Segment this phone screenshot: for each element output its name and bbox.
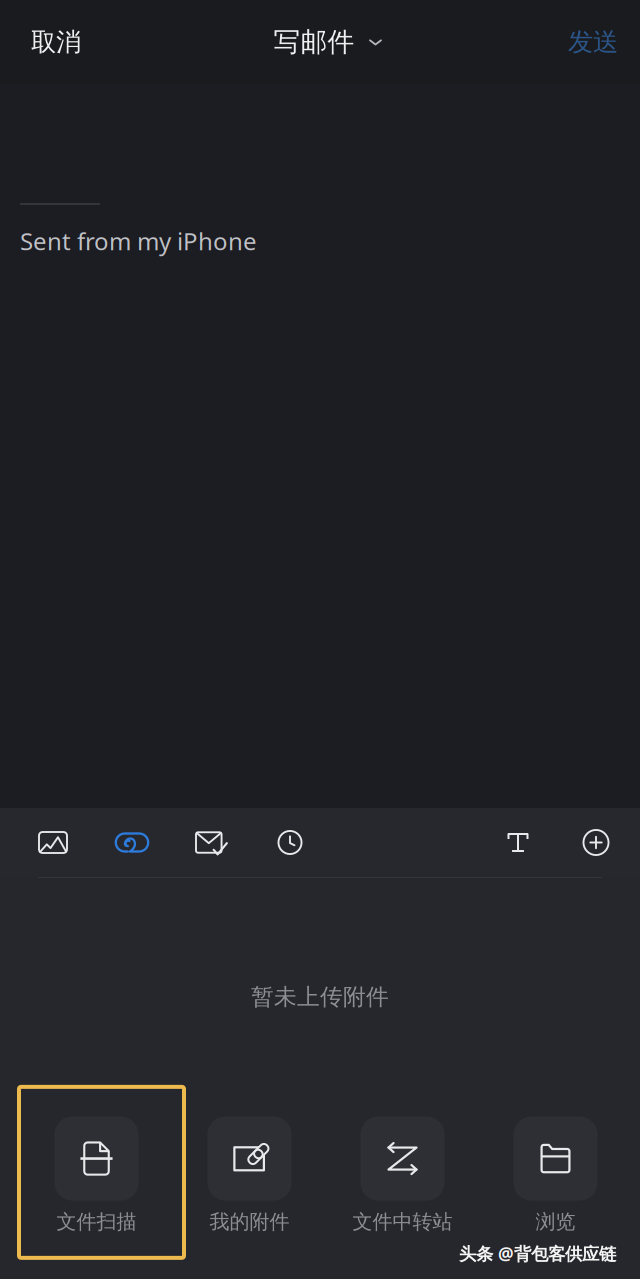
button[interactable]: 文件扫描 [20,1090,173,1265]
button[interactable]: Text format [492,813,544,871]
staticText: 浏览 [535,1210,575,1234]
button[interactable]: 我的附件 [173,1090,326,1265]
button[interactable]: More [570,813,622,871]
staticText: 头条 @背包客供应链 [459,1242,616,1265]
button[interactable]: 发送 [546,0,640,84]
button[interactable]: 写邮件 [271,0,368,84]
staticText: Sent from my iPhone [20,225,257,257]
button[interactable]: 浏览 [479,1090,632,1265]
staticText: 文件扫描 [56,1210,136,1234]
button[interactable]: Schedule send [264,813,316,871]
staticText: 文件中转站 [352,1210,452,1234]
button[interactable]: Read receipt [185,813,237,871]
button[interactable]: Insert link [106,813,158,871]
button[interactable]: 取消 [0,0,103,84]
staticText: 写邮件 [273,26,354,58]
button[interactable]: 文件中转站 [326,1090,479,1265]
staticText: 取消 [31,26,81,57]
staticText: 我的附件 [209,1210,289,1234]
staticText: 暂未上传附件 [251,983,389,1011]
button[interactable]: Insert photo [27,813,79,871]
staticText: 发送 [568,26,618,57]
